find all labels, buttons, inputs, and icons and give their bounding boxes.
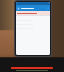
button[interactable]: Menu	[17, 7, 20, 10]
button[interactable]: Menu	[16, 5, 50, 11]
button[interactable]: More options	[47, 7, 49, 9]
button[interactable]	[16, 11, 50, 15]
button[interactable]	[17, 22, 49, 26]
button[interactable]	[17, 18, 49, 22]
button[interactable]	[17, 26, 49, 30]
